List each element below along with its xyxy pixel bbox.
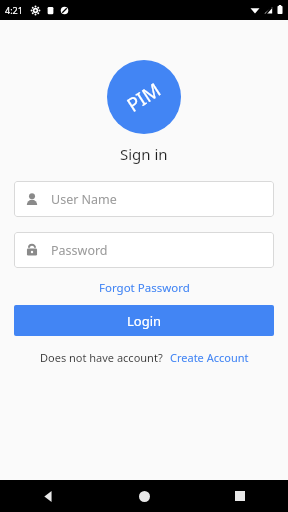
button[interactable]: Back (0, 480, 96, 512)
staticText: User Name (51, 191, 117, 208)
staticText: Password (51, 242, 108, 259)
staticText: PIM (122, 76, 166, 118)
staticText: Forgot Password (99, 280, 190, 296)
button[interactable]: Forgot Password (89, 277, 200, 299)
button[interactable]: PIM logo (107, 60, 181, 134)
staticText: 4:21 (5, 4, 23, 16)
button[interactable]: Password (14, 232, 274, 268)
button[interactable]: Login (14, 305, 274, 336)
staticText: Login (127, 312, 162, 330)
button[interactable]: Recent apps (192, 480, 288, 512)
staticText: Sign in (120, 144, 168, 164)
staticText: Create Account (170, 350, 249, 365)
button[interactable]: Home (96, 480, 192, 512)
staticText: Does not have account? (40, 350, 163, 365)
button[interactable]: User Name (14, 181, 274, 217)
button[interactable]: Create Account (170, 347, 249, 368)
